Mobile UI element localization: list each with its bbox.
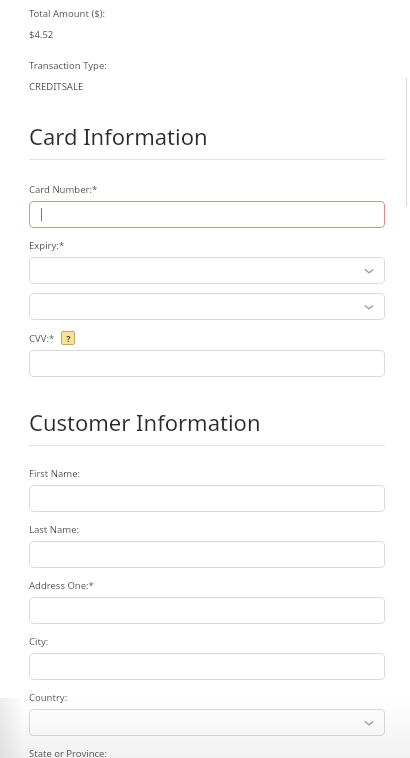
staticText: Address One:* — [29, 579, 94, 592]
staticText: First Name: — [29, 467, 81, 480]
staticText: Expiry:* — [29, 239, 65, 252]
button[interactable]: Address One:* — [29, 597, 385, 624]
staticText: Card Number:* — [29, 183, 98, 196]
staticText: Transaction Type: — [29, 59, 107, 72]
staticText: State or Province: — [29, 747, 108, 758]
staticText: $4.52 — [29, 28, 54, 41]
button[interactable]: Expiry year — [29, 293, 385, 320]
staticText: Last Name: — [29, 523, 80, 536]
staticText: City: — [29, 635, 49, 648]
staticText: ? — [66, 332, 71, 344]
staticText: Customer Information — [29, 407, 261, 437]
button[interactable]: Country: — [29, 709, 385, 736]
staticText: Country: — [29, 691, 68, 704]
staticText: Total Amount ($): — [29, 7, 106, 20]
button[interactable]: CVV — [29, 350, 385, 377]
button[interactable]: Expiry:* — [29, 257, 385, 284]
button[interactable]: Card Number:* — [29, 201, 385, 228]
button[interactable]: City: — [29, 653, 385, 680]
button[interactable]: First Name: — [29, 485, 385, 512]
button[interactable]: Last Name: — [29, 541, 385, 568]
staticText: CREDITSALE — [29, 80, 84, 93]
staticText: Card Information — [29, 121, 208, 151]
button[interactable]: CVV help — [61, 331, 75, 345]
staticText: CVV:* — [29, 332, 55, 345]
